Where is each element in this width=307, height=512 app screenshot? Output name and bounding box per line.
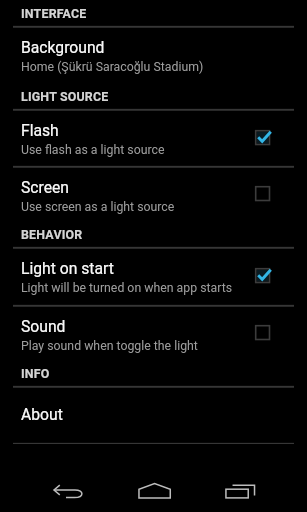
button[interactable]: Recent apps (205, 444, 307, 512)
staticText: Flash (21, 121, 59, 139)
staticText: Light will be turned on when app starts (21, 281, 233, 295)
staticText: About (21, 405, 63, 423)
button[interactable]: Back (0, 444, 103, 512)
button[interactable]: Screen (0, 167, 307, 221)
button[interactable]: Home (103, 444, 205, 512)
staticText: BEHAVIOR (21, 227, 83, 242)
button[interactable]: Sound (0, 306, 307, 360)
button[interactable]: Flash (0, 110, 307, 166)
staticText: INFO (21, 366, 50, 381)
staticText: Background (21, 38, 105, 56)
staticText: Sound (21, 317, 66, 335)
staticText: LIGHT SOURCE (21, 89, 109, 104)
staticText: Use screen as a light source (21, 200, 175, 214)
button[interactable]: About (0, 387, 307, 443)
button[interactable]: Background (0, 27, 307, 83)
staticText: INTERFACE (21, 6, 87, 21)
staticText: Screen (21, 178, 69, 196)
staticText: Home (Şükrü Saracoğlu Stadium) (21, 60, 204, 74)
staticText: Light on start (21, 259, 114, 277)
staticText: Use flash as a light source (21, 143, 165, 157)
button[interactable]: Light on start (0, 248, 307, 305)
staticText: Play sound when toggle the light (21, 339, 198, 353)
